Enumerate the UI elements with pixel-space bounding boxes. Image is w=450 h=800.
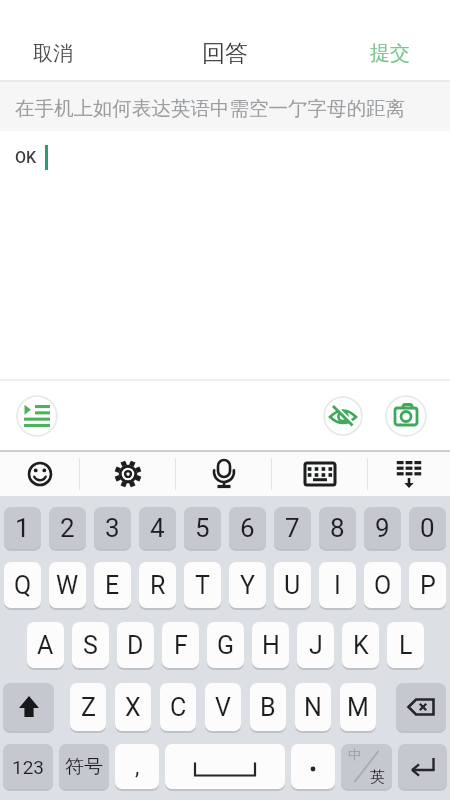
staticText: M	[347, 693, 369, 722]
button[interactable]: 符号	[59, 744, 109, 789]
staticText: I	[334, 571, 341, 600]
button[interactable]	[272, 452, 367, 496]
button[interactable]: V	[205, 683, 241, 731]
button[interactable]: Y	[229, 562, 266, 608]
button[interactable]: 0	[409, 507, 446, 549]
staticText: E	[105, 571, 120, 600]
button[interactable]: D	[117, 622, 154, 668]
staticText: 7	[285, 513, 300, 543]
staticText: 提交	[370, 41, 410, 66]
button[interactable]: 提交	[370, 41, 410, 66]
staticText: 2	[60, 513, 75, 543]
button[interactable]: X	[115, 683, 151, 731]
button[interactable]: T	[184, 562, 221, 608]
staticText: A	[37, 631, 54, 660]
button[interactable]: 4	[139, 507, 176, 549]
button[interactable]: 3	[94, 507, 131, 549]
staticText: P	[420, 571, 436, 600]
staticText: W	[56, 571, 79, 600]
staticText: 取消	[33, 41, 73, 66]
staticText: 符号	[65, 755, 103, 779]
button[interactable]: 取消	[33, 41, 73, 66]
button[interactable]: M	[340, 683, 376, 731]
button[interactable]	[323, 396, 363, 436]
button[interactable]: 中	[341, 744, 392, 789]
button[interactable]: A	[27, 622, 64, 668]
staticText: 中	[348, 746, 361, 762]
staticText: S	[83, 631, 98, 660]
button[interactable]: ,	[115, 744, 159, 789]
button[interactable]	[80, 452, 175, 496]
staticText: R	[150, 571, 166, 600]
button[interactable]: C	[160, 683, 196, 731]
button[interactable]: N	[295, 683, 331, 731]
staticText: OK	[15, 148, 37, 167]
staticText: Y	[240, 571, 256, 600]
button[interactable]: G	[207, 622, 244, 668]
staticText: K	[353, 631, 369, 660]
staticText: N	[304, 693, 322, 722]
button[interactable]	[165, 744, 285, 789]
button[interactable]	[291, 744, 335, 789]
staticText: 在手机上如何表达英语中需空一亇字母的距离	[15, 96, 405, 121]
button[interactable]: P	[409, 562, 446, 608]
staticText: 9	[375, 513, 390, 543]
button[interactable]: B	[250, 683, 286, 731]
staticText: Q	[14, 571, 32, 600]
button[interactable]: 7	[274, 507, 311, 549]
staticText: T	[195, 571, 210, 600]
button[interactable]: S	[72, 622, 109, 668]
staticText: X	[125, 693, 141, 722]
button[interactable]: 1	[4, 507, 41, 549]
button[interactable]: J	[297, 622, 334, 668]
button[interactable]: 6	[229, 507, 266, 549]
staticText: U	[284, 571, 301, 600]
staticText: 3	[105, 513, 120, 543]
button[interactable]: O	[364, 562, 401, 608]
staticText: 英	[370, 768, 385, 787]
button[interactable]: W	[49, 562, 86, 608]
staticText: Z	[81, 693, 96, 722]
staticText: D	[127, 631, 144, 660]
staticText: F	[174, 631, 188, 660]
button[interactable]	[16, 395, 58, 437]
staticText: 0	[420, 513, 435, 543]
button[interactable]: F	[162, 622, 199, 668]
staticText: V	[215, 693, 231, 722]
staticText: 1	[15, 513, 30, 543]
button[interactable]: U	[274, 562, 311, 608]
staticText: G	[217, 631, 235, 660]
button[interactable]	[385, 395, 427, 437]
button[interactable]: L	[387, 622, 424, 668]
button[interactable]: Z	[70, 683, 106, 731]
staticText: C	[170, 693, 187, 722]
staticText: 回答	[202, 39, 248, 68]
staticText: J	[309, 631, 323, 660]
staticText: L	[399, 631, 413, 660]
button[interactable]: K	[342, 622, 379, 668]
button[interactable]: I	[319, 562, 356, 608]
button[interactable]: H	[252, 622, 289, 668]
button[interactable]	[3, 683, 54, 731]
staticText: 6	[240, 513, 255, 543]
staticText: 5	[195, 513, 210, 543]
staticText: B	[260, 693, 276, 722]
button[interactable]	[0, 452, 79, 496]
button[interactable]	[396, 683, 446, 731]
button[interactable]: 2	[49, 507, 86, 549]
staticText: O	[374, 571, 392, 600]
button[interactable]: 9	[364, 507, 401, 549]
staticText: 123	[12, 756, 45, 778]
button[interactable]: 8	[319, 507, 356, 549]
button[interactable]: Q	[4, 562, 41, 608]
staticText: 4	[150, 513, 165, 543]
button[interactable]: E	[94, 562, 131, 608]
button[interactable]: 5	[184, 507, 221, 549]
staticText: H	[262, 631, 280, 660]
button[interactable]: 123	[3, 744, 53, 789]
button[interactable]	[176, 452, 271, 496]
button[interactable]	[368, 452, 450, 496]
button[interactable]	[398, 744, 447, 789]
button[interactable]: R	[139, 562, 176, 608]
staticText: ,	[135, 754, 140, 780]
